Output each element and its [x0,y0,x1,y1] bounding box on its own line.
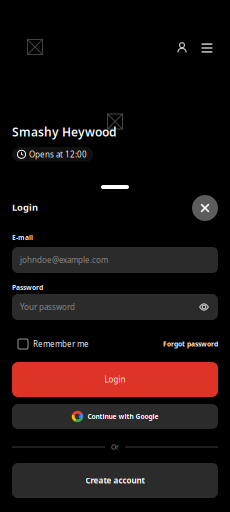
staticText: Opens at 12:00 [29,149,87,160]
staticText: Continue with Google [87,412,158,421]
staticText: Login [104,374,125,385]
button[interactable]: Forgot password [163,340,218,348]
button[interactable]: Login [12,362,218,397]
staticText: johndoe@example.com [20,255,108,265]
button[interactable]: Menu [198,39,216,57]
button[interactable]: Account [173,39,191,57]
button[interactable]: Create account [12,463,218,498]
button[interactable]: Show password [197,300,211,314]
image [107,113,123,129]
staticText: Login [12,201,38,213]
staticText: Password [12,283,43,292]
button[interactable]: Close [192,195,218,221]
staticText: Smashy Heywood [12,124,117,140]
image [27,39,43,55]
staticText: Or [111,443,119,451]
staticText: Remember me [33,339,89,349]
staticText: E-mail [12,233,33,242]
button[interactable]: Continue with Google [12,404,218,429]
staticText: Forgot password [163,340,218,348]
staticText: Your password [20,302,75,312]
staticText: Create account [85,475,144,486]
button[interactable]: Remember me [18,339,89,349]
